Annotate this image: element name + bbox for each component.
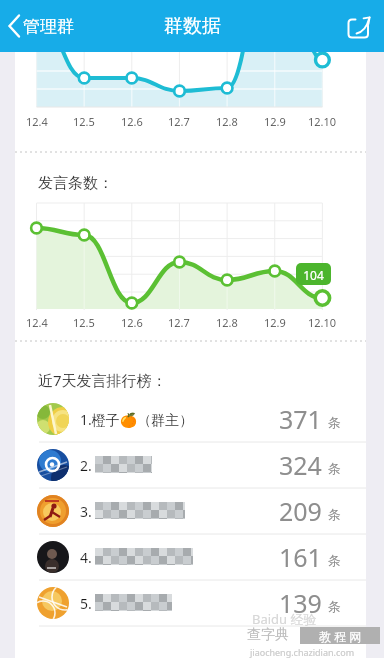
staticText: 12.6 bbox=[121, 315, 143, 330]
staticText: 12.8 bbox=[216, 114, 238, 129]
staticText: jiaocheng.chazidian.com bbox=[250, 646, 355, 658]
staticText: 1.橙子🍊（群主） bbox=[80, 410, 194, 429]
button[interactable]: 4. bbox=[15, 534, 366, 580]
staticText: 教 程 网 bbox=[319, 628, 362, 644]
staticText: Baidu 经验 bbox=[252, 610, 317, 628]
staticText: 12.6 bbox=[121, 114, 143, 129]
button[interactable]: 5. bbox=[15, 580, 366, 626]
staticText: 近7天发言排行榜： bbox=[38, 370, 167, 390]
staticText: 12.9 bbox=[264, 114, 286, 129]
button[interactable]: 3. bbox=[15, 488, 366, 534]
staticText: 104 bbox=[297, 267, 330, 283]
staticText: 2. bbox=[80, 456, 92, 475]
staticText: 群数据 bbox=[164, 14, 221, 38]
staticText: 12.8 bbox=[216, 315, 238, 330]
button[interactable]: 管理群 bbox=[0, 14, 74, 38]
staticText: 209 bbox=[279, 494, 322, 528]
staticText: 查字典 bbox=[247, 626, 289, 644]
staticText: 条 bbox=[328, 552, 341, 568]
staticText: 12.10 bbox=[308, 114, 337, 129]
staticText: 12.7 bbox=[168, 114, 190, 129]
staticText: 12.5 bbox=[73, 114, 95, 129]
button[interactable]: 2. bbox=[15, 442, 366, 488]
staticText: 4. bbox=[80, 548, 92, 567]
staticText: 12.7 bbox=[168, 315, 190, 330]
staticText: 12.9 bbox=[264, 315, 286, 330]
staticText: 12.5 bbox=[73, 315, 95, 330]
staticText: 5. bbox=[80, 594, 92, 613]
staticText: 条 bbox=[328, 506, 341, 522]
staticText: 161 bbox=[279, 540, 322, 574]
staticText: 324 bbox=[279, 448, 322, 482]
staticText: 管理群 bbox=[23, 16, 74, 37]
staticText: 139 bbox=[279, 586, 322, 620]
staticText: 条 bbox=[328, 598, 341, 614]
staticText: 发言条数： bbox=[38, 174, 113, 193]
button[interactable] bbox=[347, 13, 373, 39]
staticText: 12.4 bbox=[26, 315, 48, 330]
staticText: 3. bbox=[80, 502, 92, 521]
staticText: 条 bbox=[328, 460, 341, 476]
staticText: 371 bbox=[279, 402, 322, 436]
staticText: 12.10 bbox=[308, 315, 337, 330]
button[interactable]: 1.橙子🍊（群主） bbox=[15, 396, 366, 442]
staticText: 条 bbox=[328, 414, 341, 430]
staticText: 12.4 bbox=[26, 114, 48, 129]
